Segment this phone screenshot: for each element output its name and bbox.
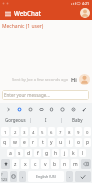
button[interactable]: y — [48, 138, 55, 147]
button[interactable]: 4 — [30, 127, 37, 136]
staticText: l — [82, 150, 84, 157]
staticText: j — [64, 150, 66, 157]
button[interactable]: 2 — [11, 127, 19, 136]
button[interactable]: i — [66, 138, 73, 147]
button[interactable]: u — [57, 138, 64, 147]
button[interactable]: Open navigation menu — [3, 9, 12, 18]
button[interactable]: Emoji — [10, 171, 17, 182]
staticText: m — [73, 161, 78, 168]
staticText: I — [45, 117, 47, 123]
staticText: z — [14, 161, 17, 168]
staticText: 3 — [23, 129, 26, 135]
button[interactable]: 9 — [75, 127, 82, 136]
staticText: 0 — [86, 129, 89, 135]
button[interactable]: Expand toolbar — [4, 105, 12, 113]
button[interactable]: w — [11, 138, 19, 147]
button[interactable]: t — [39, 138, 46, 147]
button[interactable]: s — [16, 149, 23, 157]
button[interactable]: GIF — [37, 105, 45, 113]
staticText: p — [86, 139, 90, 146]
button[interactable]: r — [30, 138, 37, 147]
button[interactable]: p — [84, 138, 91, 147]
staticText: Enter your message... — [4, 92, 50, 98]
staticText: i — [69, 139, 71, 146]
button[interactable]: h — [52, 149, 59, 157]
button[interactable]: k — [70, 149, 77, 157]
button[interactable]: Comma — [19, 171, 26, 182]
staticText: k — [72, 150, 75, 157]
button[interactable]: m — [71, 159, 79, 169]
button[interactable]: Shift — [1, 159, 10, 169]
button[interactable]: Settings — [69, 105, 77, 113]
button[interactable]: d — [25, 149, 32, 157]
staticText: b — [53, 161, 57, 168]
button[interactable]: f — [34, 149, 41, 157]
button[interactable]: Clipboard — [47, 105, 55, 113]
button[interactable]: z — [12, 159, 19, 169]
button[interactable]: Emoji — [58, 105, 66, 113]
staticText: w — [13, 139, 17, 146]
button[interactable]: Baby — [62, 114, 92, 126]
staticText: English (US) — [36, 174, 56, 179]
staticText: Sent by Joe a few seconds ago — [12, 77, 69, 82]
button[interactable]: Symbols — [1, 171, 8, 182]
staticText: o — [77, 139, 81, 146]
button[interactable]: c — [31, 159, 39, 169]
button[interactable]: x — [21, 159, 29, 169]
button[interactable]: n — [61, 159, 69, 169]
button[interactable]: Google search — [15, 105, 23, 113]
staticText: f — [37, 150, 39, 157]
staticText: h — [54, 150, 58, 157]
button[interactable]: Theme — [80, 105, 88, 113]
staticText: q — [3, 139, 7, 146]
staticText: Gorgeous — [5, 117, 26, 123]
button[interactable]: 1 — [1, 127, 9, 136]
button[interactable]: g — [43, 149, 50, 157]
button[interactable]: Backspace — [81, 159, 91, 169]
button[interactable]: Gorgeous — [0, 114, 30, 126]
button[interactable]: q — [1, 138, 9, 147]
staticText: 1 — [4, 129, 7, 135]
button[interactable]: e — [21, 138, 28, 147]
staticText: s — [18, 150, 21, 157]
button[interactable]: Profile — [80, 8, 90, 18]
staticText: a — [9, 150, 12, 157]
staticText: Hi — [71, 76, 77, 83]
button[interactable]: Period — [66, 171, 73, 182]
staticText: 4 — [32, 129, 35, 135]
button[interactable]: Stickers — [26, 105, 34, 113]
button[interactable]: o — [75, 138, 82, 147]
staticText: 5 — [41, 129, 44, 135]
button[interactable]: 8 — [66, 127, 73, 136]
button[interactable]: I — [31, 114, 61, 126]
button[interactable]: 0 — [84, 127, 91, 136]
button[interactable]: Space — [28, 171, 64, 182]
staticText: Baby — [72, 117, 83, 123]
button[interactable]: 7 — [57, 127, 64, 136]
button[interactable]: 6 — [48, 127, 55, 136]
button[interactable]: 5 — [39, 127, 46, 136]
staticText: ?123 — [1, 172, 8, 182]
staticText: t — [42, 139, 44, 146]
button[interactable]: 3 — [21, 127, 28, 136]
button[interactable]: j — [61, 149, 68, 157]
staticText: e — [23, 139, 26, 146]
staticText: u — [59, 139, 63, 146]
staticText: v — [44, 161, 47, 168]
staticText: n — [63, 161, 67, 168]
staticText: d — [27, 150, 31, 157]
staticText: 8 — [68, 129, 71, 135]
button[interactable]: a — [7, 149, 14, 157]
button[interactable]: l — [79, 149, 86, 157]
staticText: 9 — [77, 129, 80, 135]
staticText: . — [69, 173, 71, 180]
staticText: 7 — [59, 129, 62, 135]
button[interactable]: b — [51, 159, 59, 169]
staticText: WebChat — [14, 9, 41, 17]
staticText: c — [34, 161, 37, 168]
button[interactable]: Enter — [75, 171, 91, 182]
staticText: Mechanic (1 user) — [2, 23, 44, 30]
button[interactable]: v — [41, 159, 49, 169]
button[interactable]: Enter your message... — [4, 90, 87, 100]
staticText: 2 — [14, 129, 17, 135]
